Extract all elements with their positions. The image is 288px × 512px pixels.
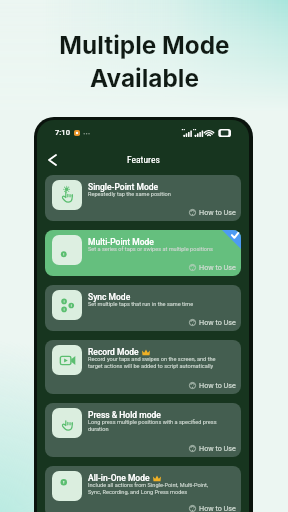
button[interactable]: All-in-One Mode <box>45 466 241 512</box>
staticText: Record Mode <box>88 347 139 357</box>
button[interactable]: How to Use <box>189 263 236 271</box>
staticText: Repeatedly tap the same position <box>88 191 171 198</box>
button[interactable]: Press & Hold mode <box>45 403 241 457</box>
staticText: Sync Mode <box>88 292 131 302</box>
staticText: How to Use <box>199 263 236 271</box>
staticText: How to Use <box>199 504 236 512</box>
button[interactable]: Back <box>45 153 59 167</box>
button[interactable]: How to Use <box>189 208 236 216</box>
staticText: How to Use <box>199 208 236 216</box>
staticText: Set multiple taps that run in the same t… <box>88 301 194 308</box>
button[interactable]: Multi-Point Mode <box>45 230 241 276</box>
staticText: Long press multiple positions with a spe… <box>88 419 217 433</box>
staticText: Set a series of taps or swipes at multip… <box>88 246 213 253</box>
button[interactable]: Single-Point Mode <box>45 175 241 221</box>
staticText: All-in-One Mode <box>88 473 150 483</box>
button[interactable]: How to Use <box>189 381 236 389</box>
button[interactable]: How to Use <box>189 444 236 452</box>
button[interactable]: How to Use <box>189 318 236 326</box>
staticText: How to Use <box>199 318 236 326</box>
staticText: Record your taps and swipes on the scree… <box>88 356 216 370</box>
button[interactable]: Sync Mode <box>45 285 241 331</box>
staticText: How to Use <box>199 444 236 452</box>
button[interactable]: How to Use <box>189 504 236 512</box>
staticText: Features <box>127 154 160 165</box>
staticText: Include all actions from Single-Point, M… <box>88 482 208 496</box>
staticText: Multi-Point Mode <box>88 237 154 247</box>
staticText: Press & Hold mode <box>88 410 161 420</box>
staticText: How to Use <box>199 381 236 389</box>
staticText: Single-Point Mode <box>88 182 159 192</box>
button[interactable]: Record Mode <box>45 340 241 394</box>
staticText: Multiple Mode Available <box>59 30 230 93</box>
staticText: 7:10 <box>55 128 70 137</box>
